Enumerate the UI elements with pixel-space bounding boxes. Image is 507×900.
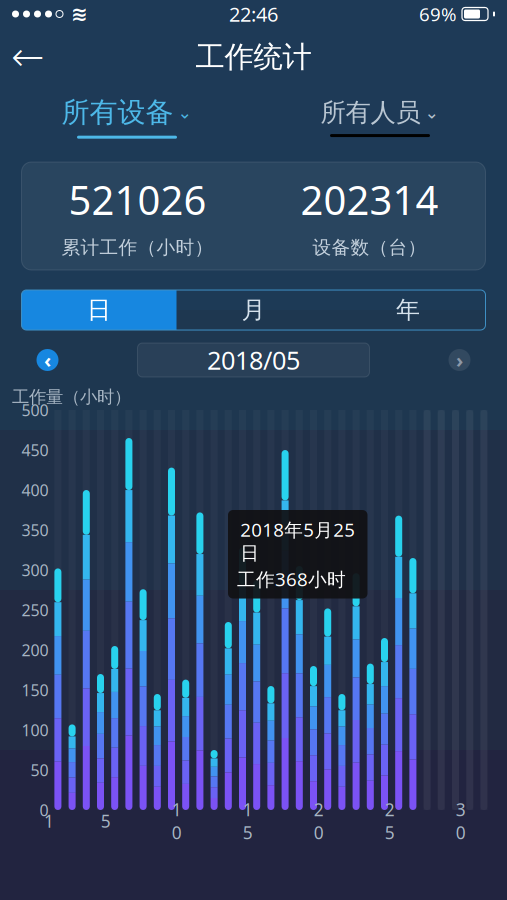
staticText: 300 bbox=[21, 559, 48, 581]
staticText: 22:46 bbox=[229, 1, 278, 27]
staticText: 2018年5月25日 bbox=[240, 517, 355, 565]
staticText: ≋ bbox=[71, 3, 88, 25]
staticText: › bbox=[456, 347, 463, 373]
staticText: 所有人员 bbox=[320, 97, 420, 128]
staticText: 400 bbox=[21, 479, 48, 501]
staticText: 累计工作（小时） bbox=[61, 236, 213, 259]
staticText: 日 bbox=[87, 295, 111, 325]
staticText: 年 bbox=[396, 295, 420, 325]
staticText: 30 bbox=[456, 798, 466, 844]
staticText: 69% bbox=[419, 2, 457, 26]
staticText: 100 bbox=[21, 719, 48, 741]
button[interactable]: 2018/05 bbox=[137, 343, 369, 377]
staticText: 1 bbox=[44, 809, 54, 832]
staticText: 521026 bbox=[68, 173, 206, 226]
staticText: 10 bbox=[172, 798, 182, 844]
button[interactable]: 年 bbox=[330, 290, 485, 330]
staticText: 200 bbox=[21, 639, 48, 661]
staticText: 月 bbox=[241, 295, 265, 325]
staticText: 0 bbox=[39, 799, 48, 821]
button[interactable]: Next month bbox=[433, 340, 485, 380]
staticText: 25 bbox=[385, 798, 395, 844]
staticText: ‹ bbox=[44, 347, 51, 373]
staticText: 50 bbox=[30, 759, 48, 781]
button[interactable]: 日 bbox=[21, 290, 176, 330]
button[interactable]: 所有设备 bbox=[0, 86, 253, 148]
button[interactable]: Back bbox=[0, 32, 56, 82]
staticText: ⌄ bbox=[424, 103, 439, 122]
staticText: 450 bbox=[21, 439, 48, 461]
staticText: 工作统计 bbox=[195, 39, 311, 75]
staticText: 250 bbox=[21, 599, 48, 621]
staticText: ⌄ bbox=[177, 103, 192, 122]
staticText: ← bbox=[11, 34, 45, 80]
staticText: 20 bbox=[314, 798, 324, 844]
staticText: 15 bbox=[243, 798, 253, 844]
staticText: 2018/05 bbox=[207, 343, 300, 377]
staticText: 工作368小时 bbox=[237, 567, 346, 591]
staticText: 350 bbox=[21, 519, 48, 541]
staticText: 150 bbox=[21, 679, 48, 701]
staticText: 工作量（小时） bbox=[12, 386, 131, 408]
button[interactable]: Previous month bbox=[21, 340, 73, 380]
staticText: 202314 bbox=[300, 173, 438, 226]
button[interactable]: 所有人员 bbox=[253, 86, 506, 148]
staticText: 500 bbox=[21, 399, 48, 421]
staticText: 所有设备 bbox=[61, 95, 173, 130]
staticText: 5 bbox=[101, 809, 111, 832]
staticText: 设备数（台） bbox=[312, 236, 426, 259]
button[interactable]: 月 bbox=[176, 290, 330, 330]
